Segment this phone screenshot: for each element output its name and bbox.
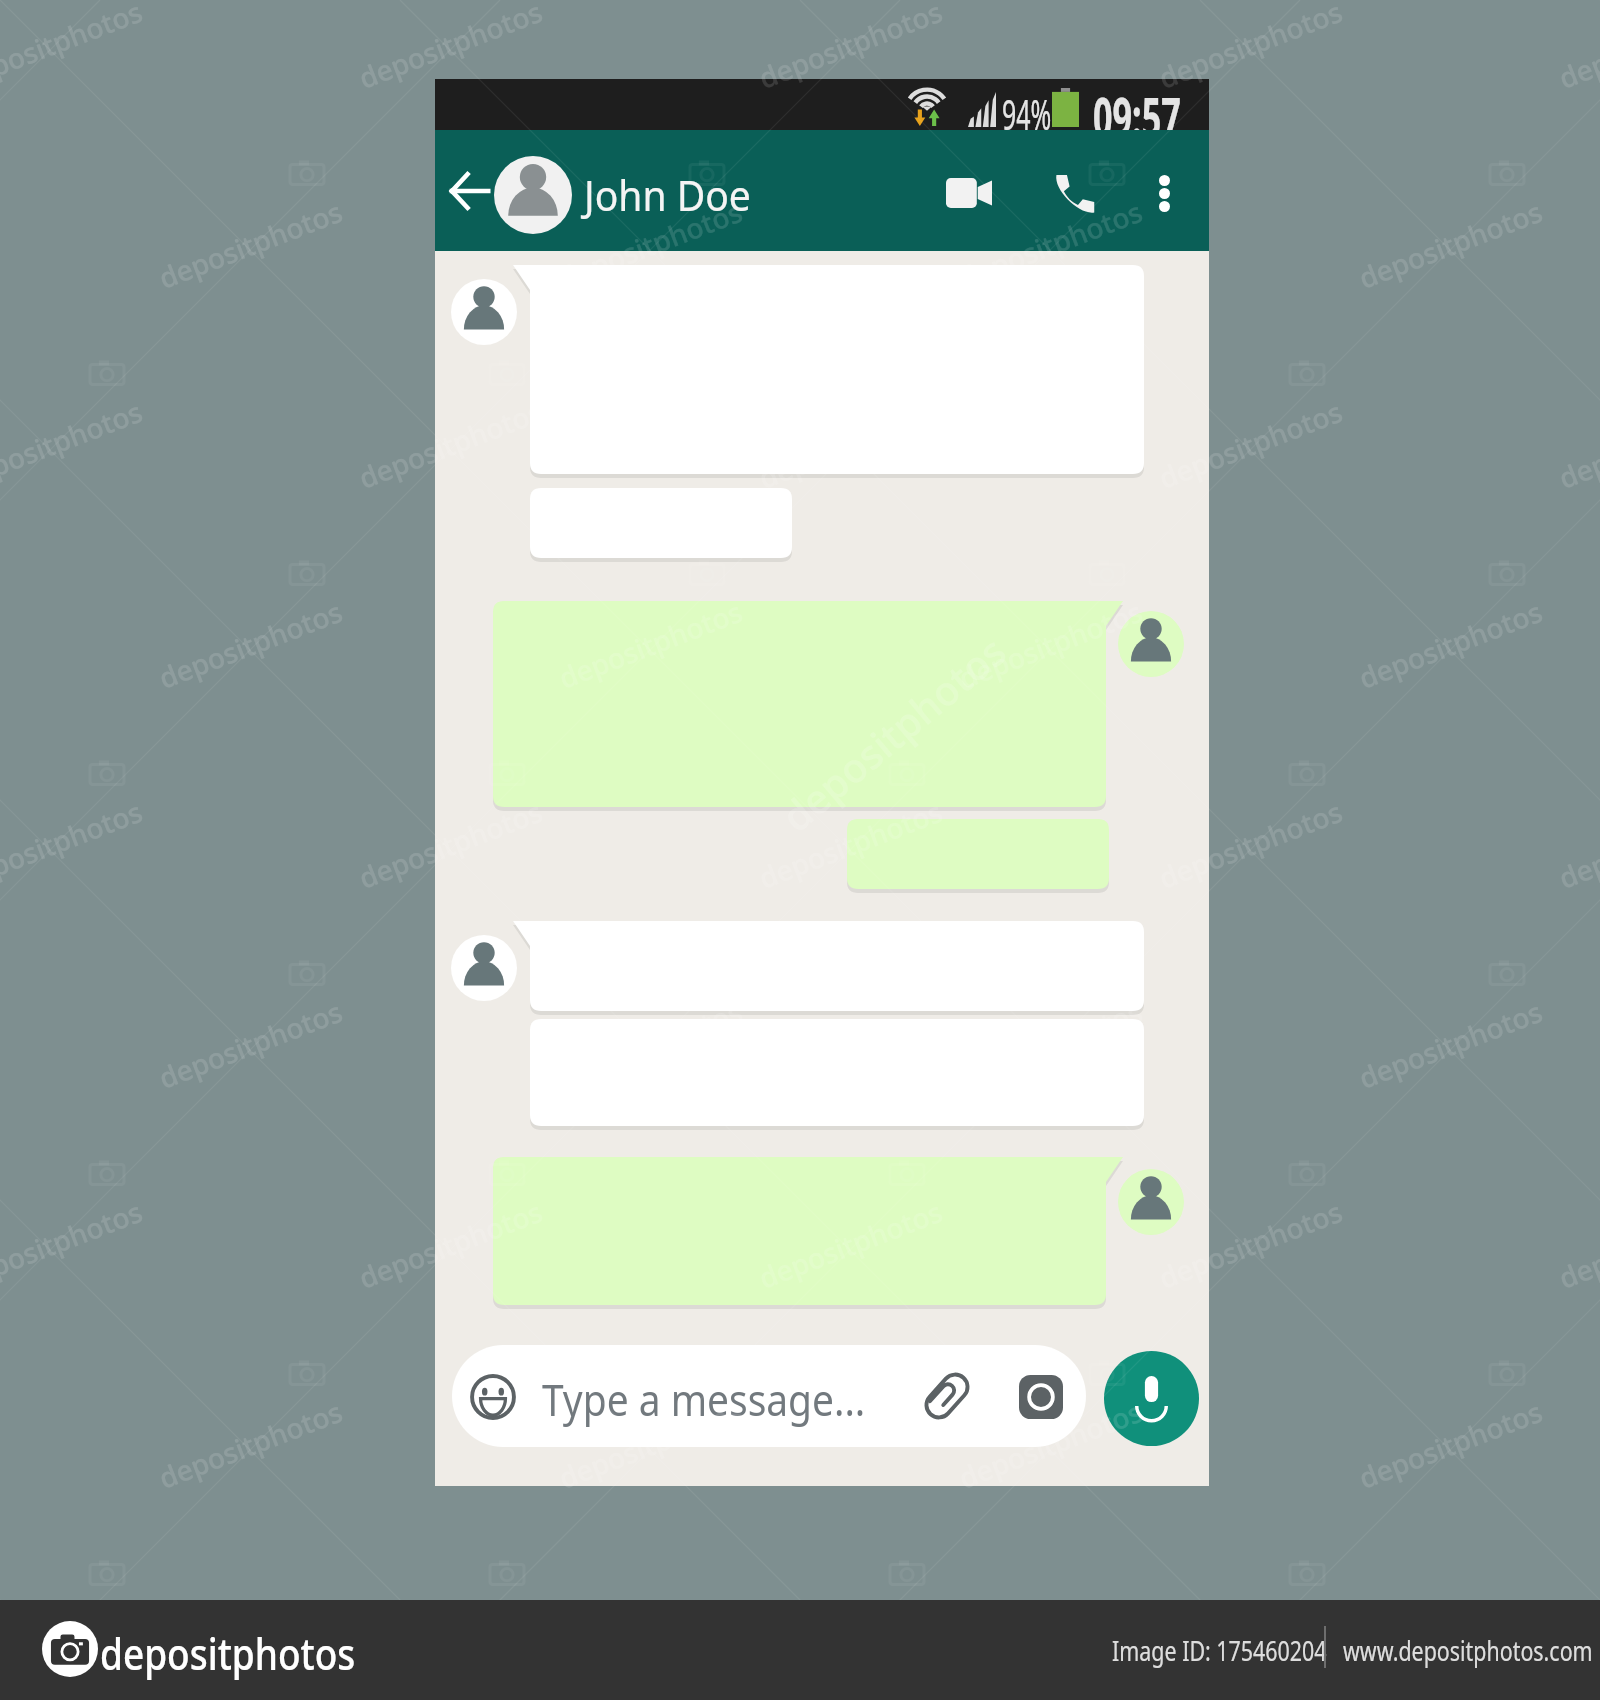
button[interactable]: Avatar [1118,611,1184,677]
button[interactable]: Message [508,482,818,572]
button[interactable]: Message [825,813,1135,903]
staticText: John Doe [584,166,751,223]
staticText: depositphotos [953,1392,1148,1497]
button[interactable]: Back [435,157,507,225]
staticText: 09:57 [1093,80,1181,131]
button[interactable]: Message [508,915,1170,1025]
staticText: depositphotos [0,1592,148,1697]
staticText: 94% [1002,85,1051,136]
staticText: depositphotos [0,792,148,897]
button[interactable]: Voice call [1038,158,1110,230]
staticText: depositphotos [1153,1192,1348,1297]
staticText: depositphotos [753,0,948,97]
staticText: depositphotos [0,0,148,97]
staticText: depositphotos [953,992,1148,1097]
staticText: depositphotos [1353,592,1548,697]
button[interactable]: Message [471,595,1132,821]
button[interactable]: More options [1134,163,1194,223]
staticText: Image ID: 175460204 [1112,1631,1327,1669]
staticText: depositphotos [353,0,548,97]
button[interactable]: Message [508,259,1170,488]
staticText: depositphotos [1553,792,1600,897]
staticText: depositphotos [353,392,548,497]
staticText: depositphotos [153,192,348,297]
button[interactable]: Voice message [1104,1351,1199,1446]
staticText: depositphotos [1153,1592,1348,1697]
staticText: depositphotos [753,792,948,897]
staticText: depositphotos [353,1192,548,1297]
button[interactable]: Message [508,1013,1170,1140]
staticText: depositphotos [1353,1392,1548,1497]
staticText: depositphotos [353,1592,548,1697]
staticText: depositphotos [1553,0,1600,97]
button[interactable]: Video call [933,157,1005,229]
button[interactable]: Avatar [1118,1169,1184,1235]
staticText: depositphotos [553,592,748,697]
staticText: depositphotos [1553,1592,1600,1697]
staticText: depositphotos [553,1392,748,1497]
button[interactable]: Type a message [452,1345,1086,1447]
staticText: depositphotos [0,1192,148,1297]
staticText: depositphotos [153,592,348,697]
button[interactable]: Message [471,1151,1132,1319]
staticText: depositphotos [553,992,748,1097]
staticText: depositphotos [153,1392,348,1497]
staticText: www.depositphotos.com [1343,1631,1593,1669]
button[interactable]: Contact photo [494,156,572,234]
staticText: depositphotos [753,1592,948,1697]
staticText: depositphotos [153,992,348,1097]
staticText: depositphotos [1153,392,1348,497]
button[interactable]: Avatar [451,279,517,345]
staticText: depositphotos [353,792,548,897]
staticText: depositphotos [553,192,748,297]
staticText: depositphotos [1553,1192,1600,1297]
staticText: depositphotos [953,192,1148,297]
staticText: depositphotos [1153,792,1348,897]
staticText: depositphotos [1153,0,1348,97]
staticText: depositphotos [1553,392,1600,497]
staticText: depositphotos [0,392,148,497]
button[interactable]: Attach [914,1363,980,1429]
staticText: depositphotos [1353,192,1548,297]
button[interactable]: Camera [1014,1370,1068,1424]
staticText: Type a message... [542,1370,866,1429]
staticText: depositphotos [770,623,1016,843]
staticText: depositphotos [1353,992,1548,1097]
staticText: depositphotos [753,392,948,497]
staticText: depositphotos [953,592,1148,697]
button[interactable]: Avatar [451,935,517,1001]
button[interactable]: Emoji [464,1368,522,1426]
staticText: depositphotos [100,1624,355,1683]
